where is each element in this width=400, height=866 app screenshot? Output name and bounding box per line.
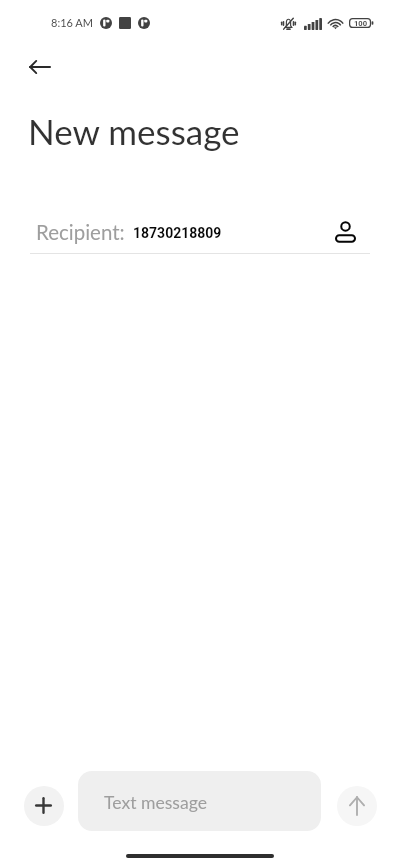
staticText: 8:16 AM [51,16,93,29]
button[interactable]: Add attachment [24,786,64,826]
staticText: Text message [104,792,208,813]
button[interactable]: Choose contact [328,216,362,250]
staticText: Recipient: [36,220,125,245]
staticText: New message [28,110,240,152]
staticText: 18730218809 [133,225,222,241]
button[interactable]: Send [337,786,377,826]
button[interactable]: Back [16,43,64,91]
button[interactable]: Text message [78,771,321,831]
staticText: 100 [354,19,368,28]
